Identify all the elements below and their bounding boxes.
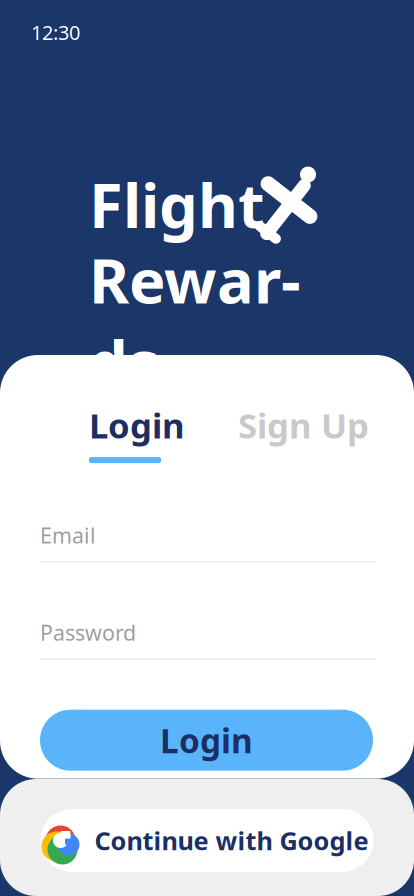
staticText: Rewards bbox=[89, 239, 301, 402]
staticText: Login bbox=[160, 718, 253, 762]
button[interactable]: Sign Up bbox=[238, 402, 369, 448]
button[interactable]: Login bbox=[89, 402, 185, 463]
button[interactable]: Continue with Google bbox=[40, 809, 373, 872]
staticText: Password bbox=[40, 618, 136, 647]
staticText: Flight bbox=[89, 164, 265, 245]
staticText: 12:30 bbox=[31, 19, 80, 46]
staticText: Login bbox=[89, 402, 185, 448]
staticText: Sign Up bbox=[238, 402, 369, 448]
staticText: Continue with Google bbox=[94, 824, 368, 857]
staticText: Email bbox=[40, 521, 96, 549]
button[interactable]: Login bbox=[40, 710, 373, 771]
